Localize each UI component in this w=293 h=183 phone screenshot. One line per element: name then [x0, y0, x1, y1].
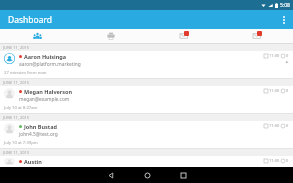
staticText: 0	[286, 53, 289, 58]
staticText: July 10 at 8:27am	[4, 105, 38, 111]
staticText: JUNE 11, 2015	[3, 45, 30, 50]
staticText: 0	[286, 88, 289, 93]
staticText: John Bustad	[24, 123, 57, 130]
button[interactable]: More options	[275, 10, 293, 29]
staticText: aaron@platform.marketing	[19, 61, 81, 68]
staticText: 0	[286, 123, 289, 128]
staticText: 5:08	[280, 2, 290, 9]
button[interactable]: Aaron Huisinga	[0, 51, 293, 70]
staticText: 27 minutes from now	[4, 70, 46, 76]
button[interactable]: John Bustad	[0, 121, 293, 140]
staticText: JUNE 11, 2015	[3, 80, 30, 85]
button[interactable]: Recents	[173, 167, 193, 183]
staticText: john4.5@test.org	[19, 131, 58, 138]
staticText: Austin	[24, 158, 42, 165]
staticText: JUNE 11, 2015	[3, 150, 30, 155]
staticText: megan@example.com	[19, 96, 70, 103]
staticText: JUNE 11, 2015	[3, 115, 30, 120]
staticText: Dashboard	[8, 14, 53, 26]
staticText: 0	[286, 158, 289, 163]
button[interactable]: Megan Halverson	[0, 86, 293, 105]
button[interactable]: Mail tab	[147, 29, 220, 43]
staticText: 11:00	[269, 158, 280, 163]
button[interactable]: Inbox tab	[220, 29, 293, 43]
staticText: Aaron Huisinga	[24, 53, 67, 60]
staticText: 11:00	[269, 88, 280, 93]
button[interactable]: People tab	[0, 29, 74, 43]
staticText: July 10 at 7:39pm	[4, 140, 38, 146]
button[interactable]: Austin	[0, 156, 293, 167]
staticText: 11:00	[269, 53, 280, 58]
button[interactable]: Home	[137, 167, 157, 183]
button[interactable]: Print tab	[74, 29, 147, 43]
staticText: Megan Halverson	[24, 88, 73, 95]
staticText: 11:00	[269, 123, 280, 128]
button[interactable]: Back	[101, 167, 121, 183]
